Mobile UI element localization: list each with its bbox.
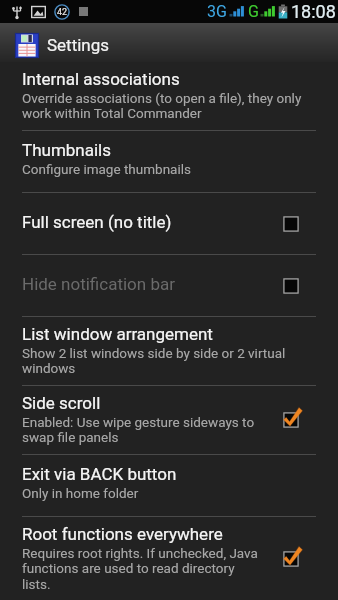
button[interactable]: Thumbnails (0, 131, 338, 192)
staticText: 18:08 (291, 1, 336, 22)
staticText: Root functions everywhere (22, 524, 223, 544)
button[interactable]: List window arrangement (0, 317, 338, 385)
button[interactable]: Internal associations (0, 62, 338, 130)
staticText: Enabled: Use wipe gesture sideways to sw… (22, 414, 255, 446)
button[interactable]: Full screen (no title) (0, 193, 338, 254)
other: Full screen (no title) (278, 211, 304, 237)
staticText: Internal associations (22, 69, 180, 89)
staticText: Show 2 list windows side by side or 2 vi… (22, 345, 286, 377)
staticText: 3G (207, 2, 227, 21)
other: Hide notification bar (278, 273, 304, 299)
button[interactable]: Exit via BACK button (0, 455, 338, 516)
staticText: Full screen (no title) (22, 212, 172, 232)
button[interactable]: Root functions everywhere (0, 517, 338, 600)
staticText: 42 (57, 7, 68, 18)
staticText: Requires root rights. If unchecked, Java… (22, 545, 258, 593)
other: Root functions everywhere (278, 546, 304, 572)
staticText: List window arrangement (22, 324, 213, 344)
staticText: Configure image thumbnails (22, 161, 192, 177)
staticText: Hide notification bar (22, 274, 175, 294)
staticText: Only in home folder (22, 485, 139, 501)
button[interactable]: Side scroll (0, 386, 338, 454)
button[interactable]: Hide notification bar (0, 255, 338, 316)
staticText: Exit via BACK button (22, 464, 177, 484)
other: Side scroll (278, 407, 304, 433)
staticText: Override associations (to open a file), … (22, 90, 302, 122)
staticText: G (248, 2, 259, 21)
staticText: Side scroll (22, 393, 101, 413)
staticText: Thumbnails (22, 140, 112, 160)
staticText: Settings (47, 35, 110, 55)
